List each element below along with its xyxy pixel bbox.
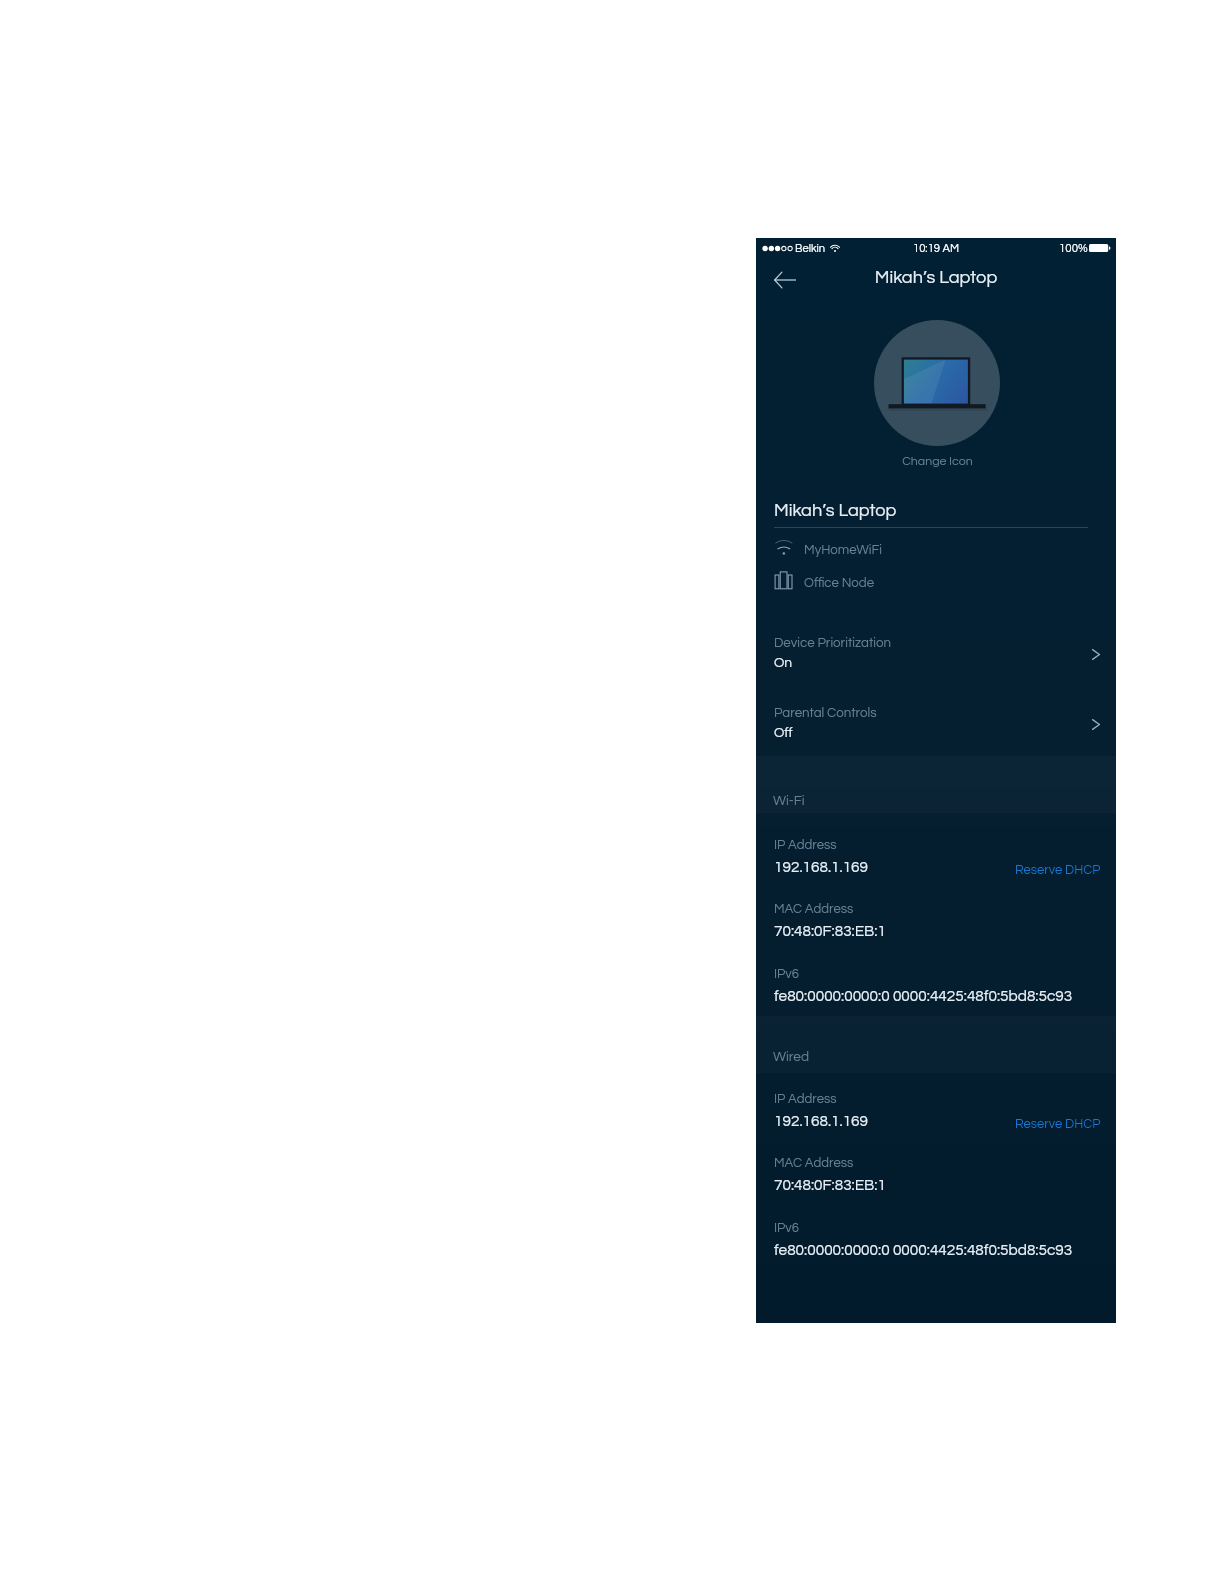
staticText: 100% bbox=[1059, 243, 1088, 255]
staticText: 192.168.1.169 bbox=[774, 1113, 869, 1129]
staticText: MAC Address bbox=[774, 1156, 854, 1169]
button[interactable]: Office Node bbox=[756, 573, 1116, 599]
button[interactable]: MyHomeWiFi bbox=[756, 540, 1116, 566]
staticText: Change Icon bbox=[902, 455, 973, 468]
staticText: On bbox=[774, 656, 793, 670]
staticText: Device Prioritization bbox=[774, 636, 892, 650]
staticText: 10:19 AM bbox=[756, 243, 1116, 255]
staticText: Mikah’s Laptop bbox=[756, 268, 1116, 287]
button[interactable]: Back bbox=[767, 262, 803, 298]
staticText: fe80:0000:0000:0 0000:4425:48f0:5bd8:5c9… bbox=[774, 988, 1073, 1004]
button[interactable]: Reserve DHCP bbox=[1015, 863, 1101, 876]
staticText: IPv6 bbox=[774, 967, 799, 980]
staticText: Wired bbox=[773, 1050, 809, 1064]
staticText: Office Node bbox=[804, 576, 874, 590]
staticText: Reserve DHCP bbox=[1015, 863, 1101, 876]
staticText: 70:48:0F:83:EB:1 bbox=[774, 923, 886, 939]
button[interactable]: Parental Controls bbox=[756, 699, 1116, 761]
button[interactable]: Reserve DHCP bbox=[1015, 1117, 1101, 1130]
button[interactable]: Device Prioritization bbox=[756, 629, 1116, 691]
staticText: IP Address bbox=[774, 1092, 837, 1105]
staticText: IPv6 bbox=[774, 1221, 799, 1234]
staticText: fe80:0000:0000:0 0000:4425:48f0:5bd8:5c9… bbox=[774, 1242, 1073, 1258]
staticText: Belkin bbox=[795, 243, 826, 255]
button[interactable]: Change Icon bbox=[857, 320, 1017, 468]
staticText: Wi-Fi bbox=[773, 794, 805, 808]
staticText: Parental Controls bbox=[774, 706, 877, 720]
staticText: MAC Address bbox=[774, 902, 854, 915]
staticText: 70:48:0F:83:EB:1 bbox=[774, 1177, 886, 1193]
staticText: Off bbox=[774, 726, 793, 740]
staticText: 192.168.1.169 bbox=[774, 859, 869, 875]
staticText: IP Address bbox=[774, 838, 837, 851]
staticText: Reserve DHCP bbox=[1015, 1117, 1101, 1130]
staticText: Mikah’s Laptop bbox=[774, 501, 897, 520]
staticText: MyHomeWiFi bbox=[804, 543, 882, 557]
